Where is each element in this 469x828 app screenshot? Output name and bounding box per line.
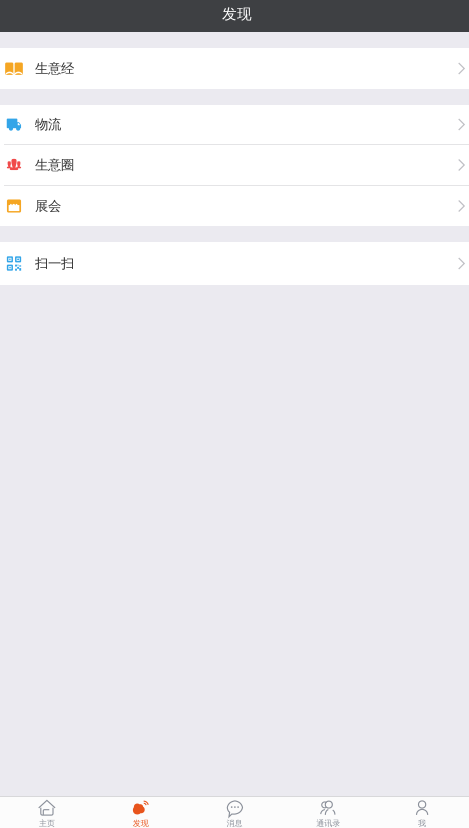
button[interactable]: 扫一扫 bbox=[0, 242, 469, 285]
button[interactable]: 发现 bbox=[94, 797, 188, 828]
staticText: 生意圈 bbox=[35, 157, 74, 173]
staticText: 主页 bbox=[39, 818, 55, 828]
button[interactable]: 我 bbox=[375, 797, 469, 828]
staticText: 发现 bbox=[222, 5, 252, 23]
button[interactable]: 主页 bbox=[0, 797, 94, 828]
staticText: 扫一扫 bbox=[35, 255, 74, 272]
staticText: 物流 bbox=[35, 116, 61, 133]
staticText: 通讯录 bbox=[316, 818, 340, 828]
button[interactable]: 通讯录 bbox=[281, 797, 375, 828]
button[interactable]: 展会 bbox=[0, 186, 469, 226]
staticText: 消息 bbox=[226, 818, 242, 828]
staticText: 我 bbox=[418, 818, 426, 828]
staticText: 展会 bbox=[35, 198, 61, 214]
button[interactable]: 消息 bbox=[188, 797, 281, 828]
button[interactable]: 物流 bbox=[0, 105, 469, 145]
button[interactable]: 生意圈 bbox=[0, 145, 469, 186]
staticText: 发现 bbox=[133, 818, 149, 828]
staticText: 生意经 bbox=[35, 60, 74, 77]
button[interactable]: 生意经 bbox=[0, 48, 469, 89]
